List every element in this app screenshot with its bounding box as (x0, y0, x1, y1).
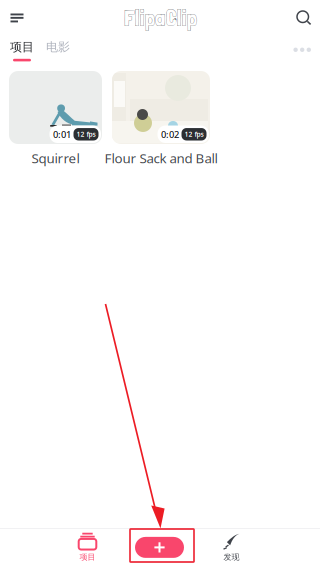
staticText: Squirrel (31, 149, 79, 167)
staticText: 12 fps (76, 130, 95, 139)
button[interactable]: 0:02 (112, 71, 210, 164)
staticText: FlipaClip (124, 5, 197, 31)
staticText: 12 fps (184, 130, 203, 139)
staticText: 0:02 (161, 128, 179, 140)
button[interactable]: 0:01 (9, 71, 102, 164)
staticText: 发现 (223, 552, 239, 562)
staticText: 电影 (46, 40, 70, 54)
staticText: 0:01 (53, 128, 71, 140)
staticText: 项目 (10, 40, 34, 54)
button[interactable]: 项目 (0, 38, 44, 61)
button[interactable]: Menu (0, 0, 37, 36)
button[interactable]: 发现 (195, 529, 267, 566)
staticText: Flour Sack and Ball (104, 149, 217, 167)
staticText: 项目 (79, 552, 95, 562)
button[interactable]: 电影 (44, 38, 72, 54)
button[interactable]: Search (283, 0, 320, 36)
button[interactable]: 项目 (51, 529, 123, 566)
button[interactable]: More (293, 38, 320, 52)
button[interactable]: New project (123, 529, 195, 566)
